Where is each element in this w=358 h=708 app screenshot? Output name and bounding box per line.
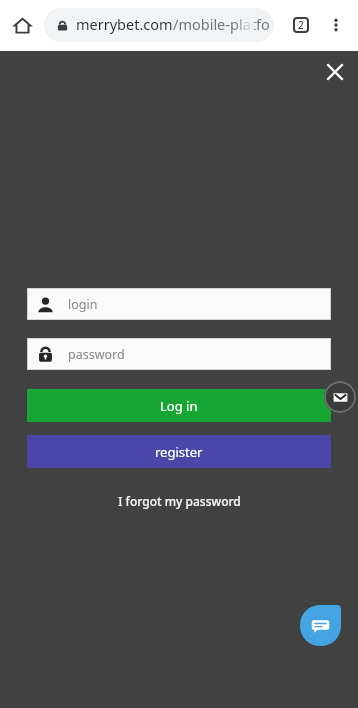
staticText: /mobile-platfo [173,14,270,34]
button[interactable]: login [27,288,331,320]
staticText: register [155,443,203,461]
button[interactable]: Close [317,54,353,90]
staticText: password [68,346,125,363]
button[interactable]: More options [320,9,352,41]
staticText: merrybet.com [76,14,173,34]
button[interactable]: register [27,435,331,468]
button[interactable]: I forgot my password [0,490,358,512]
button[interactable]: Tabs, 2 open [285,9,317,41]
button[interactable]: Email support [324,381,356,413]
button[interactable]: Chat [300,605,341,646]
button[interactable]: merrybet.com [44,8,274,42]
staticText: login [68,296,98,313]
staticText: I forgot my password [118,493,241,509]
staticText: 2 [298,18,304,32]
button[interactable]: password [27,338,331,370]
button[interactable]: Home [6,9,38,41]
button[interactable]: Log in [27,389,331,422]
staticText: Log in [160,397,198,415]
